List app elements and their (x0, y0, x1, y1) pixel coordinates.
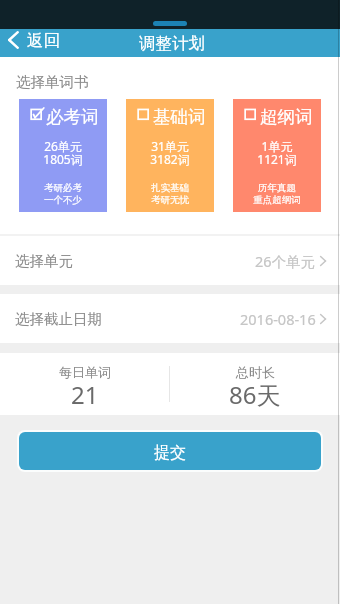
staticText: 选择单元 (15, 252, 73, 270)
staticText: 超纲词 (260, 106, 313, 128)
button[interactable]: 每日单词 (0, 356, 169, 413)
staticText: 返回 (27, 30, 60, 51)
button[interactable]: 基础词 (126, 99, 214, 212)
staticText: 选择截止日期 (15, 310, 102, 328)
staticText: 31单元 3182词 (150, 138, 190, 167)
staticText: 总时长 (236, 364, 275, 380)
staticText: 26单元 1805词 (43, 138, 83, 167)
staticText: 2016-08-16 (240, 309, 316, 329)
staticText: 基础词 (153, 106, 206, 128)
staticText: 调整计划 (139, 33, 205, 54)
button[interactable]: 提交 (19, 432, 321, 470)
staticText: 扎实基础 考研无忧 (151, 182, 189, 205)
staticText: 1单元 1121词 (257, 138, 297, 167)
button[interactable]: 超纲词 (233, 99, 321, 212)
button[interactable]: 返回 (0, 29, 70, 57)
button[interactable]: 选择单元 (0, 236, 340, 285)
staticText: 考研必考 一个不少 (44, 182, 82, 205)
staticText: 选择单词书 (16, 73, 89, 91)
button[interactable]: 必考词 (19, 99, 107, 212)
staticText: 必考词 (46, 106, 99, 128)
staticText: 26个单元 (255, 251, 316, 271)
button[interactable]: 总时长 (170, 356, 340, 413)
staticText: 历年真题 重点超纲词 (253, 182, 301, 205)
staticText: 86天 (229, 378, 281, 411)
staticText: 每日单词 (59, 364, 111, 380)
staticText: 21 (71, 378, 99, 411)
staticText: 提交 (154, 443, 186, 463)
button[interactable]: 选择截止日期 (0, 294, 340, 343)
